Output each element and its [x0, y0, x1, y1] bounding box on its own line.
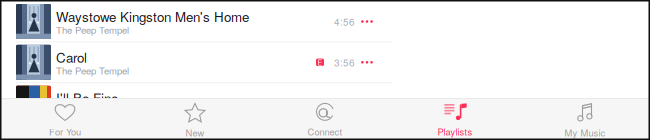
- button[interactable]: Waystowe Kingston Men's Home: [0, 1, 392, 41]
- staticText: For You: [49, 125, 81, 138]
- staticText: Playlists: [437, 125, 472, 138]
- button[interactable]: Connect: [260, 98, 390, 140]
- staticText: I'll Be Fine: [56, 88, 118, 107]
- button[interactable]: I'll Be Fine: [0, 83, 392, 123]
- button[interactable]: For You: [0, 98, 130, 140]
- staticText: 3:12: [334, 96, 355, 110]
- staticText: The Peep Tempel: [56, 23, 129, 36]
- button[interactable]: My Music: [520, 98, 650, 140]
- button[interactable]: Playlists: [390, 98, 520, 140]
- button[interactable]: New: [130, 98, 260, 140]
- staticText: The Peep Tempel: [56, 104, 129, 118]
- staticText: Connect: [307, 125, 342, 138]
- staticText: 3:56: [334, 55, 355, 69]
- staticText: Waystowe Kingston Men's Home: [56, 7, 249, 26]
- button[interactable]: Carol: [0, 42, 392, 82]
- staticText: My Music: [564, 126, 605, 139]
- staticText: E: [317, 57, 322, 67]
- staticText: 4:56: [334, 14, 355, 29]
- staticText: Carol: [56, 47, 87, 66]
- staticText: New: [185, 126, 204, 139]
- staticText: The Peep Tempel: [56, 63, 129, 77]
